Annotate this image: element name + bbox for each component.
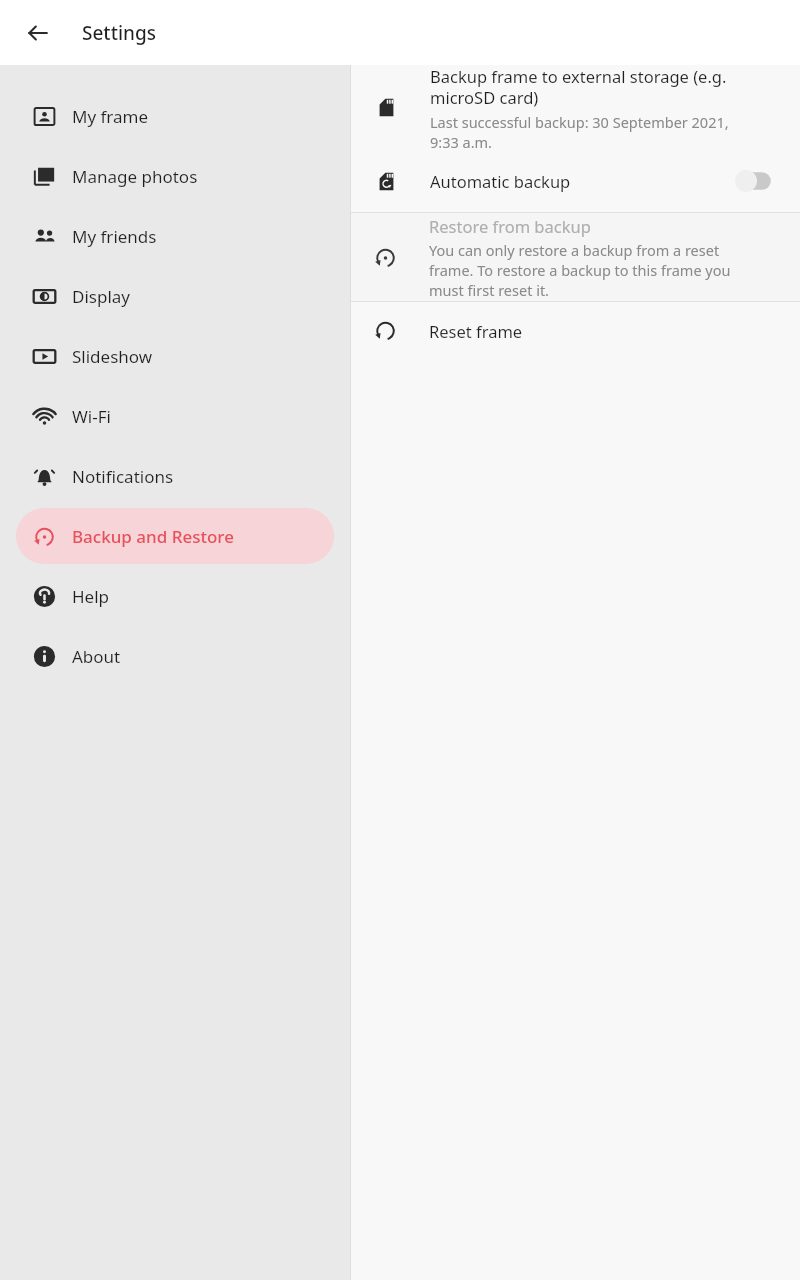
staticText: Backup frame to external storage (e.g. m… (430, 65, 760, 109)
staticText: Automatic backup (430, 170, 726, 192)
staticText: Help (72, 585, 110, 608)
button[interactable]: Notifications (16, 448, 334, 504)
button[interactable]: Slideshow (16, 328, 334, 384)
staticText: Display (72, 285, 130, 308)
staticText: Manage photos (72, 165, 198, 188)
staticText: About (72, 645, 121, 668)
button[interactable]: Reset frame (351, 302, 800, 359)
button[interactable]: Display (16, 268, 334, 324)
button[interactable]: Backup and Restore (16, 508, 334, 564)
button[interactable]: About (16, 628, 334, 684)
staticText: Reset frame (429, 320, 523, 342)
staticText: My frame (72, 105, 149, 128)
staticText: Restore from backup (429, 215, 591, 237)
staticText: My friends (72, 225, 157, 248)
staticText: You can only restore a backup from a res… (429, 240, 760, 300)
button[interactable]: Back (16, 11, 60, 55)
button[interactable]: Restore from backup (351, 213, 800, 301)
staticText: Slideshow (72, 345, 153, 368)
staticText: Wi-Fi (72, 405, 111, 428)
button[interactable]: Automatic backup (351, 150, 800, 212)
staticText: Last successful backup: 30 September 202… (430, 112, 760, 150)
button[interactable]: Automatic backup toggle, off (726, 161, 782, 201)
staticText: Settings (82, 20, 156, 46)
staticText: Backup and Restore (72, 525, 234, 548)
button[interactable]: My friends (16, 208, 334, 264)
button[interactable]: Help (16, 568, 334, 624)
button[interactable]: My frame (16, 88, 334, 144)
button[interactable]: Manage photos (16, 148, 334, 204)
staticText: Notifications (72, 465, 174, 488)
button[interactable]: Backup frame to external storage (e.g. m… (351, 65, 800, 150)
button[interactable]: Wi-Fi (16, 388, 334, 444)
